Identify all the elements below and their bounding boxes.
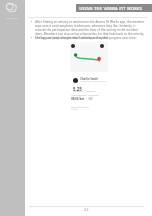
- staticText: DISTANCE: [73, 90, 84, 93]
- staticText: 348: [88, 97, 93, 101]
- staticText: 00:42:17: [87, 90, 97, 93]
- staticText: ELEVATION GAIN: [71, 106, 90, 109]
- staticText: AVERAGE PACE: [71, 94, 87, 97]
- staticText: USING THE 'AMMA FIT WORKS' APP: [79, 6, 142, 11]
- staticText: 08:02/km: [71, 97, 85, 101]
- staticText: 5.25: [73, 86, 82, 92]
- button[interactable]: More options: [100, 44, 104, 48]
- button[interactable]: USING THE 'AMMA FIT WORKS' APP: [76, 4, 152, 12]
- staticText: Wednesday 14 July at 09:30: [80, 80, 107, 83]
- staticText: 112 m: [71, 108, 78, 111]
- staticText: The app can track the member's activity …: [35, 36, 137, 40]
- staticText: CALORIES: [88, 94, 99, 97]
- staticText: After finding an activity or workout on …: [35, 20, 146, 40]
- button[interactable]: Back: [71, 44, 75, 48]
- staticText: 42: [84, 207, 89, 212]
- staticText: Charlie Smith: [80, 77, 99, 81]
